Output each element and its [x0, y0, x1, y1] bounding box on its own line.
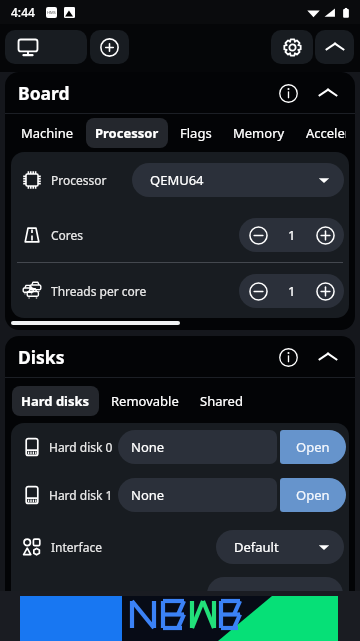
- button[interactable]: Add: [90, 30, 129, 64]
- button[interactable]: Display tab: [5, 30, 87, 64]
- button[interactable]: Increase: [306, 274, 344, 308]
- staticText: 4:44: [11, 4, 35, 20]
- button[interactable]: Info: [269, 74, 307, 112]
- button[interactable]: Memory: [224, 118, 294, 148]
- button[interactable]: Shared: [191, 386, 252, 416]
- button[interactable]: Decrease: [239, 274, 277, 308]
- staticText: Hard disks: [21, 392, 90, 410]
- staticText: 1: [288, 282, 296, 300]
- staticText: Processor: [95, 124, 159, 142]
- button[interactable]: Hard disks: [12, 386, 99, 416]
- button[interactable]: None: [118, 478, 277, 512]
- button[interactable]: QEMU64: [132, 163, 344, 197]
- button[interactable]: Increase: [306, 218, 344, 252]
- staticText: Cores: [51, 227, 84, 243]
- staticText: Threads per core: [51, 283, 147, 299]
- button[interactable]: Open: [280, 478, 346, 512]
- staticText: Default: [234, 538, 279, 556]
- button[interactable]: Flags: [171, 118, 221, 148]
- button[interactable]: Hard disk 1: [11, 471, 349, 519]
- button[interactable]: None: [118, 430, 277, 464]
- staticText: None: [131, 438, 165, 456]
- staticText: Machine: [21, 124, 74, 142]
- button[interactable]: Hard disk 0: [11, 423, 349, 471]
- button[interactable]: Collapse section: [309, 338, 347, 376]
- button[interactable]: Interface: [11, 519, 349, 574]
- staticText: Board: [18, 81, 70, 105]
- button[interactable]: [11, 574, 349, 614]
- staticText: Flags: [180, 124, 212, 142]
- staticText: Hard disk 0: [49, 439, 113, 455]
- button[interactable]: Info: [269, 338, 307, 376]
- staticText: Hard disk 1: [49, 487, 113, 503]
- staticText: Interface: [51, 539, 102, 555]
- staticText: QEMU64: [150, 171, 204, 189]
- staticText: None: [131, 486, 165, 504]
- button[interactable]: Default: [216, 530, 344, 564]
- button[interactable]: Collapse: [315, 30, 354, 64]
- staticText: Open: [296, 438, 330, 456]
- button[interactable]: Open: [280, 430, 346, 464]
- button[interactable]: Threads per core: [11, 263, 349, 318]
- button[interactable]: Accelerator: [297, 118, 355, 148]
- button[interactable]: Decrease: [239, 218, 277, 252]
- button[interactable]: Processor: [86, 118, 168, 148]
- button[interactable]: Cores: [11, 207, 349, 262]
- button[interactable]: Removable: [102, 386, 188, 416]
- staticText: Open: [296, 486, 330, 504]
- staticText: Disks: [18, 345, 65, 369]
- staticText: Accelerator: [306, 124, 346, 142]
- button[interactable]: Collapse section: [309, 74, 347, 112]
- button[interactable]: Machine: [12, 118, 83, 148]
- staticText: Removable: [111, 392, 179, 410]
- staticText: Shared: [200, 392, 243, 410]
- staticText: Processor: [51, 172, 107, 188]
- button[interactable]: Processor: [11, 152, 349, 207]
- staticText: 1: [288, 226, 296, 244]
- button[interactable]: Settings: [271, 30, 313, 64]
- staticText: HMS: [47, 10, 56, 15]
- staticText: Memory: [233, 124, 285, 142]
